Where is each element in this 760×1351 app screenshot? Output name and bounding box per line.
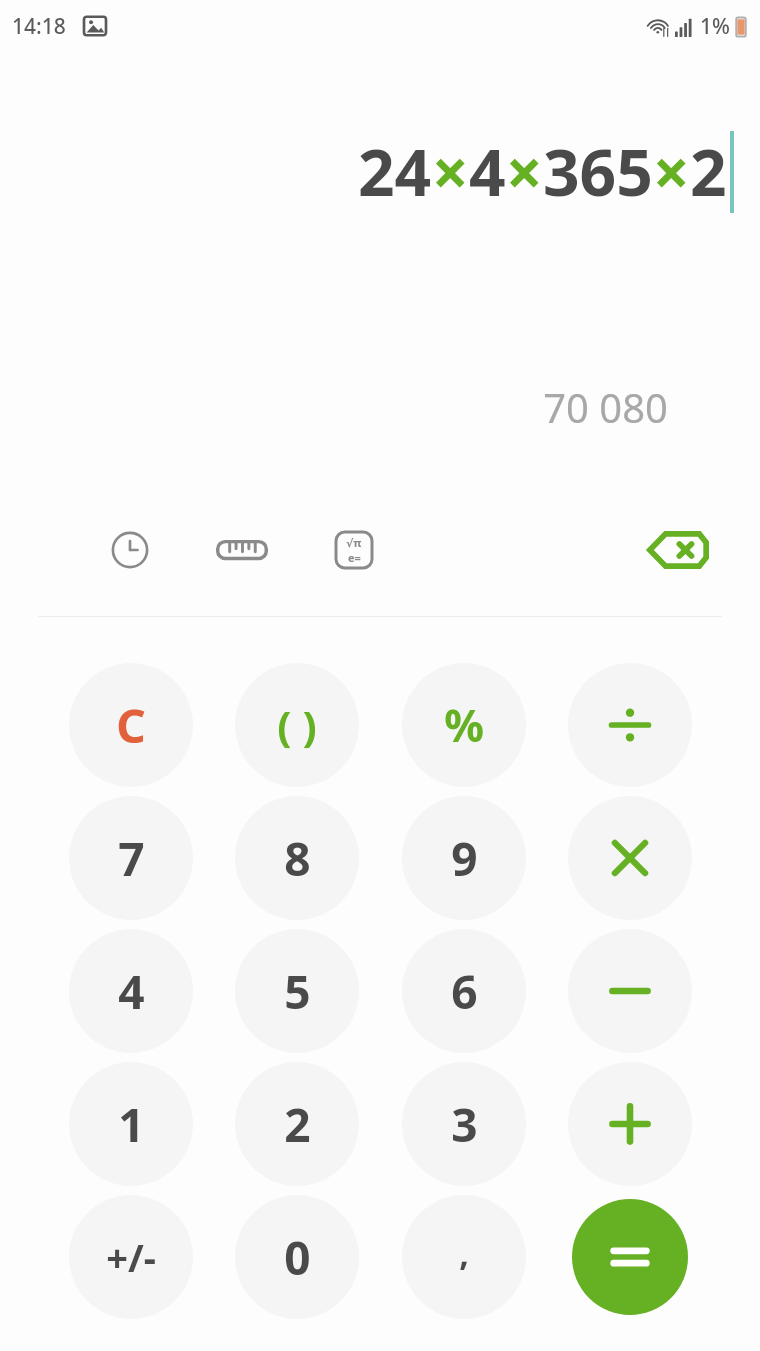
button[interactable]: Decimal separator	[402, 1195, 526, 1319]
staticText: 4	[118, 960, 145, 1023]
staticText: √π	[346, 535, 362, 550]
staticText: 0	[284, 1226, 311, 1289]
button[interactable]: Unit converter	[210, 518, 274, 582]
button[interactable]: Parentheses	[235, 663, 359, 787]
staticText: 14:18	[12, 12, 66, 41]
button[interactable]: 8	[235, 796, 359, 920]
button[interactable]: 1	[69, 1062, 193, 1186]
staticText: 7	[118, 827, 145, 890]
button[interactable]: 5	[235, 929, 359, 1053]
button[interactable]: 0	[235, 1195, 359, 1319]
button[interactable]: Backspace	[630, 518, 726, 582]
button[interactable]: Scientific	[322, 518, 386, 582]
button[interactable]: C	[69, 663, 193, 787]
staticText: 70 080	[543, 380, 668, 434]
staticText: 3	[451, 1093, 478, 1156]
button[interactable]: 9	[402, 796, 526, 920]
staticText: ,	[459, 1230, 469, 1276]
button[interactable]: Plus minus	[69, 1195, 193, 1319]
staticText: 6	[451, 960, 478, 1023]
button[interactable]: 7	[69, 796, 193, 920]
button[interactable]: 4	[69, 929, 193, 1053]
staticText: 2	[284, 1093, 311, 1156]
staticText: 8	[284, 827, 311, 890]
button[interactable]: 3	[402, 1062, 526, 1186]
button[interactable]: Percent	[402, 663, 526, 787]
button[interactable]: 2	[235, 1062, 359, 1186]
staticText: +/-	[106, 1231, 156, 1283]
staticText: e=	[348, 550, 361, 565]
staticText: 2	[690, 128, 727, 215]
staticText: C	[116, 694, 146, 757]
button[interactable]: 6	[402, 929, 526, 1053]
button[interactable]: Multiply	[568, 796, 692, 920]
staticText: ×	[506, 128, 543, 215]
staticText: ×	[653, 128, 690, 215]
staticText: 1%	[700, 12, 730, 41]
staticText: 365	[543, 128, 653, 215]
button[interactable]: Equals	[572, 1199, 688, 1315]
staticText: ( )	[277, 697, 317, 754]
staticText: 5	[284, 960, 311, 1023]
staticText: 4	[469, 128, 506, 215]
staticText: ×	[432, 128, 469, 215]
staticText: 9	[451, 827, 478, 890]
button[interactable]: Minus	[568, 929, 692, 1053]
button[interactable]: Plus	[568, 1062, 692, 1186]
button[interactable]: Divide	[568, 663, 692, 787]
staticText: 24	[358, 128, 432, 215]
staticText: %	[444, 695, 484, 755]
staticText: 1	[118, 1093, 145, 1156]
button[interactable]: History	[98, 518, 162, 582]
